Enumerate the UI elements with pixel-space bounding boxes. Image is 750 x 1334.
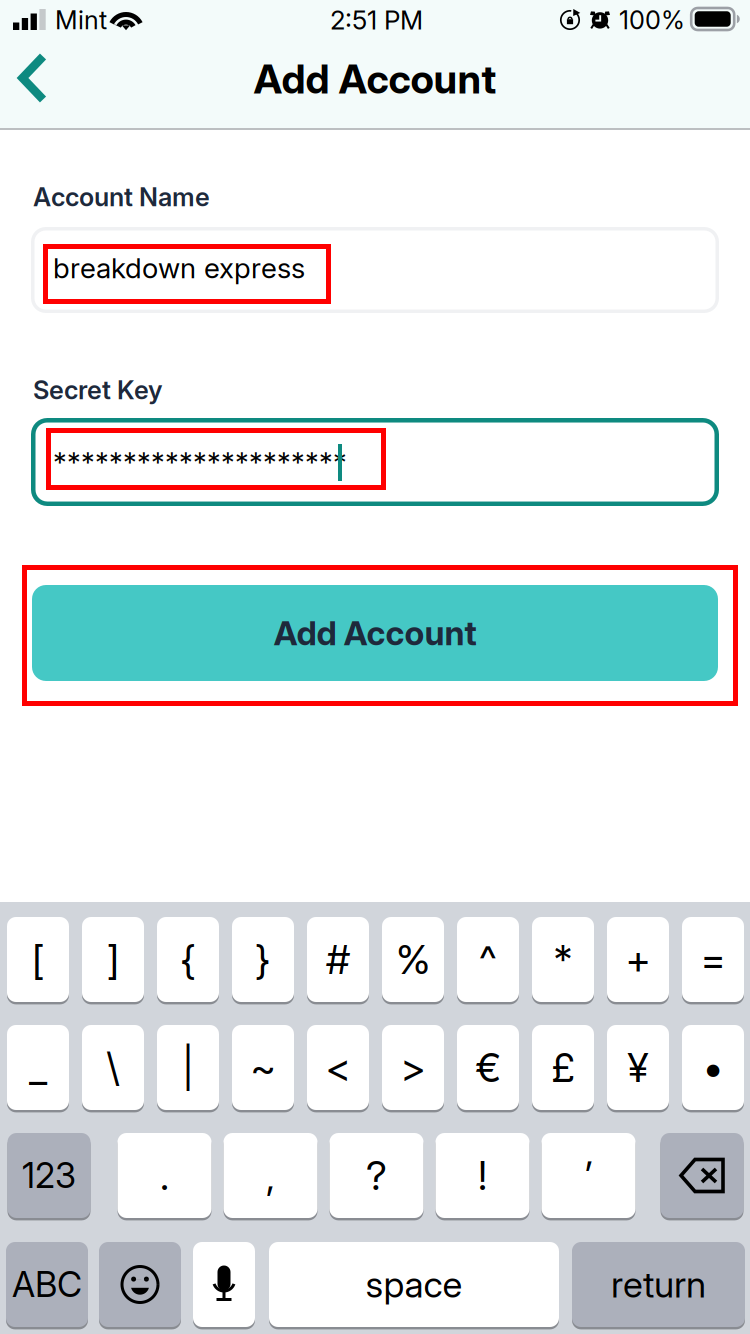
button[interactable]: # xyxy=(307,917,369,1002)
button[interactable]: * xyxy=(532,917,594,1002)
staticText: ’ xyxy=(584,1151,592,1200)
button[interactable]: _ xyxy=(7,1025,69,1110)
button[interactable]: ! xyxy=(435,1133,529,1218)
staticText: { xyxy=(180,935,196,984)
button[interactable]: Dictation xyxy=(193,1242,255,1327)
button[interactable]: space xyxy=(269,1242,559,1327)
button[interactable]: + xyxy=(607,917,669,1002)
button[interactable]: Back xyxy=(2,42,64,114)
staticText: 2:51 PM xyxy=(330,4,423,36)
staticText: 123 xyxy=(22,1154,76,1196)
staticText: < xyxy=(325,1043,350,1092)
button[interactable]: ~ xyxy=(232,1025,294,1110)
staticText: [ xyxy=(32,935,44,984)
button[interactable]: ¥ xyxy=(607,1025,669,1110)
staticText: ! xyxy=(478,1151,487,1200)
staticText: ********************* xyxy=(53,445,347,479)
button[interactable]: ^ xyxy=(457,917,519,1002)
button[interactable]: return xyxy=(572,1242,745,1327)
button[interactable]: € xyxy=(457,1025,519,1110)
staticText: breakdown express xyxy=(53,251,305,285)
button[interactable]: £ xyxy=(532,1025,594,1110)
button[interactable]: Emoji xyxy=(99,1242,181,1327)
button[interactable]: 123 xyxy=(7,1133,90,1218)
button[interactable]: | xyxy=(157,1025,219,1110)
staticText: % xyxy=(396,935,430,984)
staticText: Add Account xyxy=(253,55,496,103)
button[interactable]: \ xyxy=(82,1025,144,1110)
staticText: + xyxy=(625,935,650,984)
staticText: ] xyxy=(107,935,119,984)
staticText: * xyxy=(553,935,572,984)
button[interactable]: Delete xyxy=(660,1133,743,1218)
button[interactable]: { xyxy=(157,917,219,1002)
staticText: Account Name xyxy=(33,182,210,212)
button[interactable]: > xyxy=(382,1025,444,1110)
staticText: Secret Key xyxy=(33,375,163,405)
button[interactable]: Add Account xyxy=(22,565,738,706)
staticText: \ xyxy=(106,1043,119,1092)
staticText: 100% xyxy=(619,5,685,35)
button[interactable]: < xyxy=(307,1025,369,1110)
button[interactable]: ] xyxy=(82,917,144,1002)
staticText: , xyxy=(266,1151,275,1200)
button[interactable]: ********************* xyxy=(31,418,719,506)
staticText: Add Account xyxy=(273,613,476,653)
button[interactable]: • xyxy=(682,1025,744,1110)
staticText: space xyxy=(365,1263,462,1306)
staticText: ? xyxy=(366,1151,387,1200)
button[interactable]: = xyxy=(682,917,744,1002)
staticText: ^ xyxy=(479,935,497,984)
staticText: } xyxy=(255,935,271,984)
staticText: Mint xyxy=(55,5,107,35)
staticText: # xyxy=(326,935,350,984)
button[interactable]: [ xyxy=(7,917,69,1002)
staticText: | xyxy=(182,1043,194,1092)
staticText: . xyxy=(160,1151,169,1200)
button[interactable]: breakdown express xyxy=(31,227,719,313)
staticText: ABC xyxy=(12,1263,82,1305)
staticText: ¥ xyxy=(627,1043,648,1092)
staticText: _ xyxy=(29,1043,47,1092)
staticText: ~ xyxy=(250,1043,275,1092)
button[interactable]: ? xyxy=(329,1133,423,1218)
button[interactable]: % xyxy=(382,917,444,1002)
staticText: £ xyxy=(551,1043,574,1092)
staticText: € xyxy=(475,1043,500,1092)
staticText: = xyxy=(700,935,725,984)
button[interactable]: ’ xyxy=(541,1133,635,1218)
button[interactable]: ABC xyxy=(6,1242,88,1327)
button[interactable]: , xyxy=(223,1133,317,1218)
button[interactable]: . xyxy=(117,1133,211,1218)
staticText: • xyxy=(703,1043,723,1092)
staticText: > xyxy=(400,1043,425,1092)
staticText: return xyxy=(611,1263,706,1306)
button[interactable]: } xyxy=(232,917,294,1002)
